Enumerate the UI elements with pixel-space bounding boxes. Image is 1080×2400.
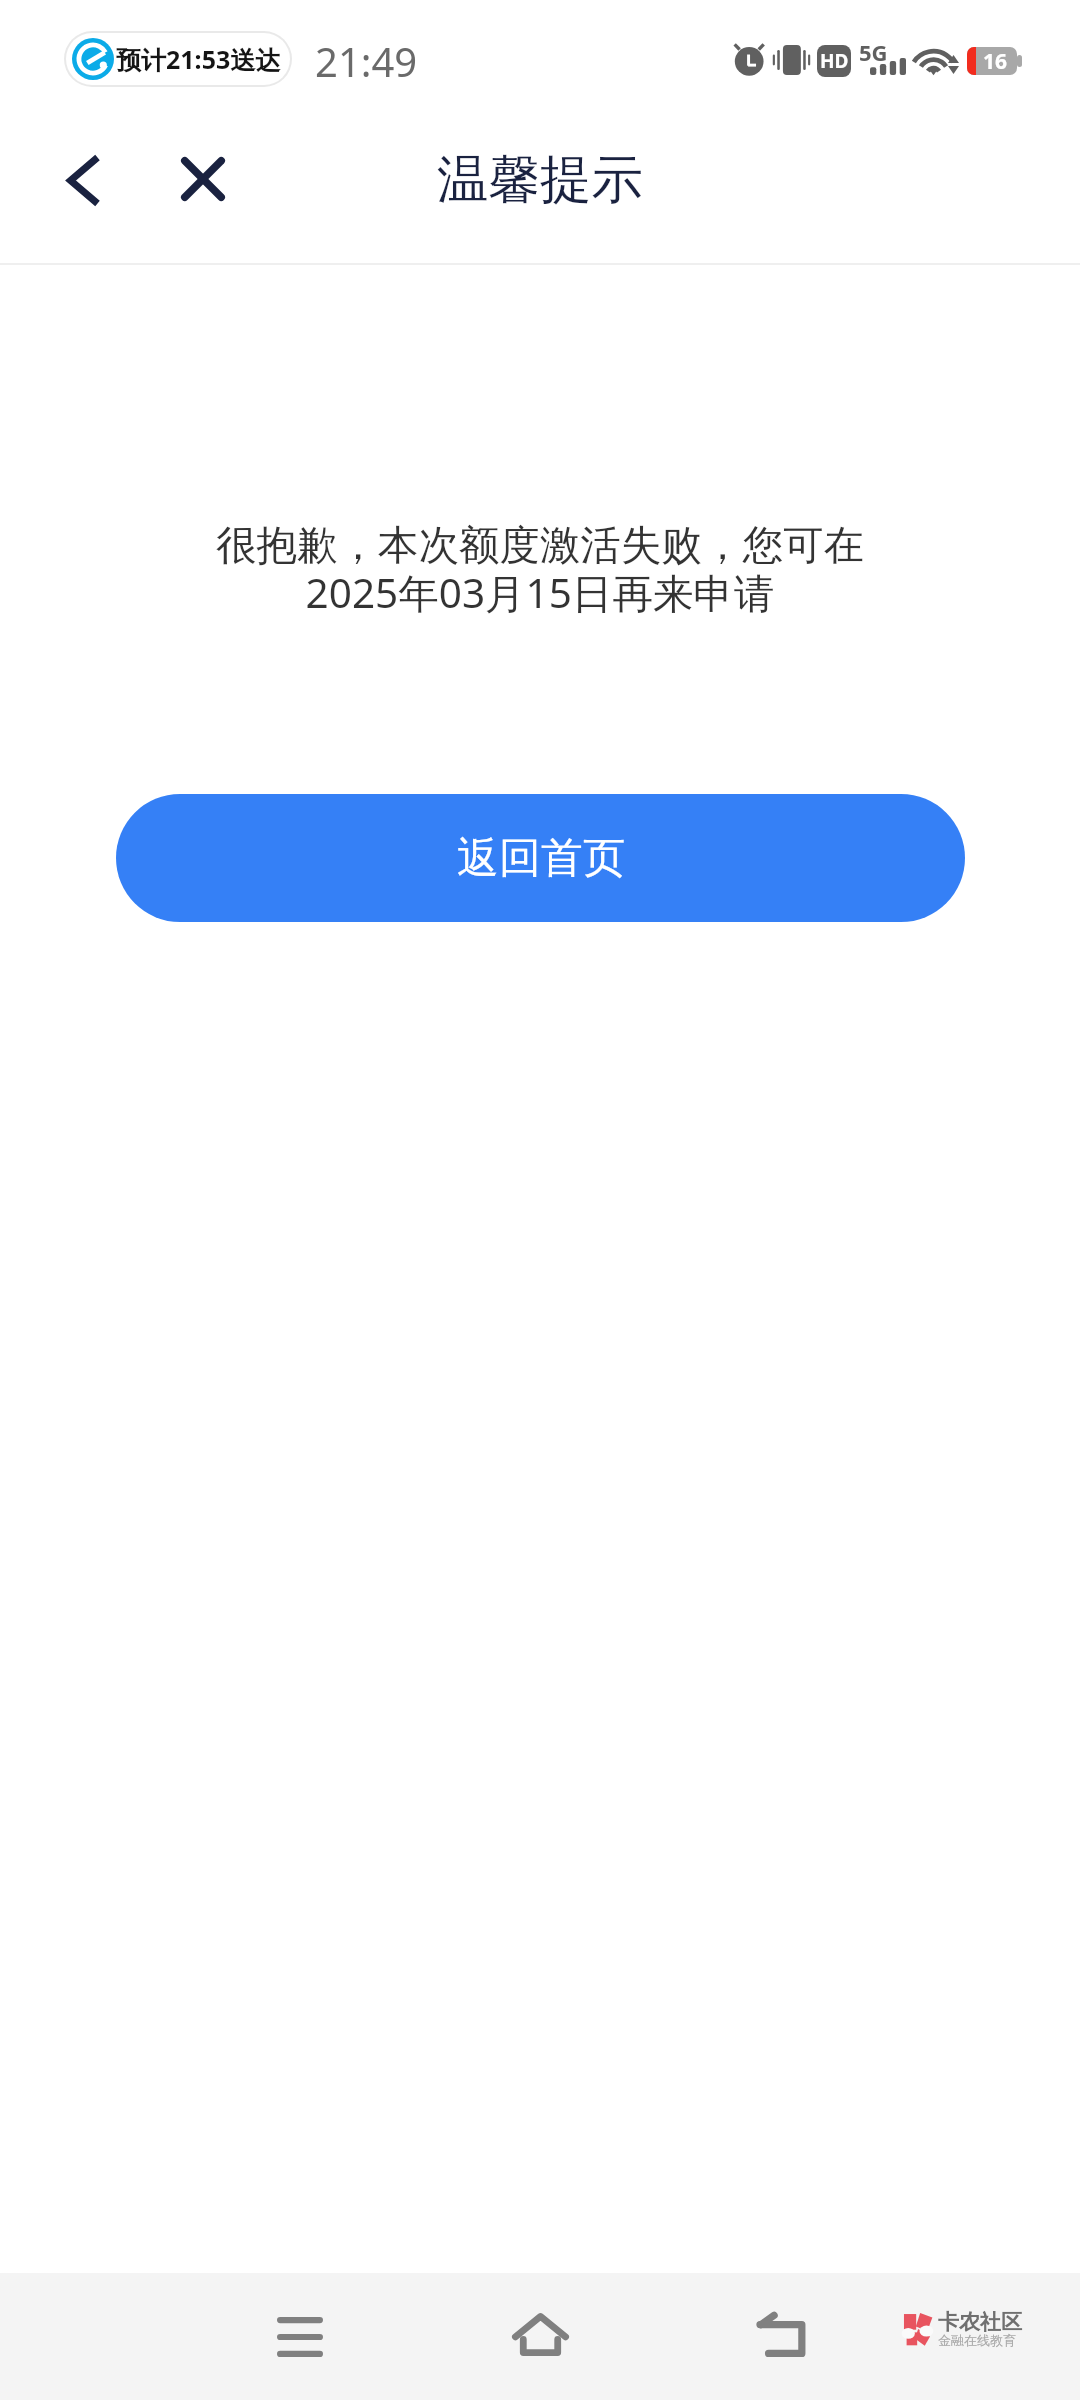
button[interactable]: Home bbox=[470, 2273, 610, 2400]
button[interactable]: 返回首页 bbox=[116, 794, 965, 922]
staticText: 很抱歉，本次额度激活失败，您可在 2025年03月15日再来申请 bbox=[0, 520, 1080, 620]
staticText: 卡农社区 bbox=[938, 2309, 1022, 2335]
staticText: 16 bbox=[983, 47, 1008, 75]
button[interactable]: Recent apps bbox=[230, 2273, 370, 2400]
button[interactable]: Back bbox=[32, 128, 136, 232]
staticText: 21:49 bbox=[315, 34, 418, 88]
staticText: 返回首页 bbox=[457, 832, 625, 885]
staticText: HD bbox=[820, 48, 849, 74]
button[interactable]: Close bbox=[151, 127, 255, 231]
staticText: 温馨提示 bbox=[437, 147, 643, 212]
staticText: 5G bbox=[859, 37, 888, 67]
staticText: 预计21:53送达 bbox=[116, 42, 281, 76]
button[interactable]: Back bbox=[712, 2273, 852, 2400]
staticText: 金融在线教育 bbox=[938, 2332, 1016, 2348]
